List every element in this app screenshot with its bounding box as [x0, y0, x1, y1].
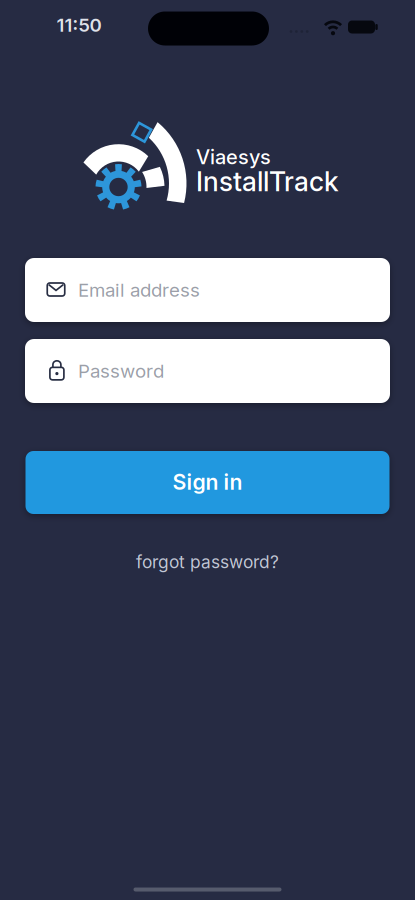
staticText: Viaesys — [196, 145, 271, 169]
staticText: forgot password? — [136, 552, 279, 572]
staticText: Password — [78, 360, 164, 382]
staticText: InstallTrack — [196, 166, 339, 197]
staticText: Sign in — [172, 469, 242, 495]
staticText: Email address — [78, 279, 200, 301]
staticText: 11:50 — [56, 14, 101, 36]
